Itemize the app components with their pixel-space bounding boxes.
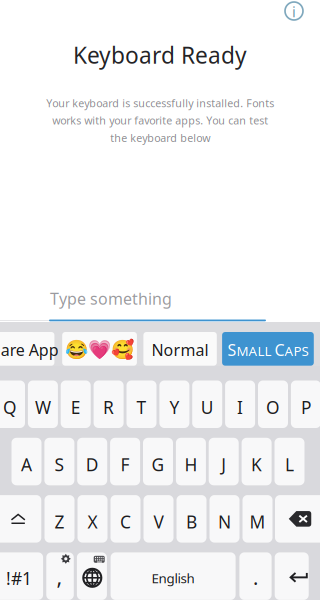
- button[interactable]: Q: [0, 380, 25, 428]
- button[interactable]: L: [274, 438, 304, 485]
- button[interactable]: !#1: [0, 552, 43, 600]
- button[interactable]: M: [242, 495, 272, 543]
- button[interactable]: J: [209, 438, 239, 485]
- staticText: Type something: [50, 288, 172, 309]
- staticText: F: [121, 453, 130, 476]
- staticText: R: [103, 396, 114, 419]
- button[interactable]: Share App: [0, 332, 54, 366]
- button[interactable]: Y: [159, 380, 189, 428]
- staticText: H: [184, 453, 197, 476]
- staticText: Normal: [152, 339, 209, 360]
- staticText: A: [21, 453, 32, 476]
- button[interactable]: H: [176, 438, 206, 485]
- staticText: V: [153, 510, 163, 533]
- button[interactable]: I: [225, 380, 255, 428]
- staticText: SMALL CAPS: [227, 339, 308, 360]
- staticText: Keyboard Ready: [73, 40, 247, 70]
- staticText: K: [251, 453, 262, 476]
- staticText: P: [301, 396, 311, 419]
- button[interactable]: Return: [275, 552, 309, 600]
- staticText: W: [35, 396, 51, 419]
- button[interactable]: R: [94, 380, 124, 428]
- staticText: L: [285, 453, 294, 476]
- staticText: 😂💗🥰: [65, 339, 134, 360]
- staticText: M: [249, 510, 265, 533]
- button[interactable]: S: [44, 438, 74, 485]
- staticText: G: [151, 453, 164, 476]
- button[interactable]: Next keyboard: [77, 552, 107, 600]
- button[interactable]: 😂💗🥰: [62, 332, 137, 366]
- button[interactable]: F: [110, 438, 140, 485]
- staticText: I: [237, 396, 243, 419]
- staticText: Your keyboard is successfully installed.…: [46, 96, 274, 145]
- staticText: English: [152, 569, 195, 587]
- button[interactable]: SMALL CAPS: [222, 332, 314, 366]
- button[interactable]: Info: [284, 1, 304, 21]
- button[interactable]: Z: [44, 495, 74, 543]
- staticText: Z: [54, 510, 64, 533]
- staticText: C: [120, 510, 131, 533]
- staticText: B: [186, 510, 197, 533]
- staticText: O: [266, 396, 280, 419]
- staticText: .: [253, 564, 258, 590]
- button[interactable]: B: [176, 495, 206, 543]
- button[interactable]: Settings: [46, 552, 74, 600]
- staticText: X: [87, 510, 97, 533]
- button[interactable]: W: [28, 380, 58, 428]
- staticText: ,: [56, 562, 62, 591]
- button[interactable]: X: [77, 495, 107, 543]
- button[interactable]: K: [242, 438, 272, 485]
- button[interactable]: O: [258, 380, 288, 428]
- staticText: Y: [169, 396, 179, 419]
- staticText: S: [54, 453, 64, 476]
- button[interactable]: D: [77, 438, 107, 485]
- staticText: E: [71, 396, 81, 419]
- button[interactable]: English: [111, 552, 236, 600]
- button[interactable]: N: [209, 495, 239, 543]
- staticText: !#1: [6, 567, 32, 590]
- staticText: D: [86, 453, 99, 476]
- staticText: N: [218, 510, 231, 533]
- button[interactable]: E: [61, 380, 91, 428]
- button[interactable]: U: [192, 380, 222, 428]
- button[interactable]: C: [110, 495, 140, 543]
- button[interactable]: Normal: [143, 332, 217, 366]
- button[interactable]: G: [143, 438, 173, 485]
- staticText: U: [201, 396, 214, 419]
- button[interactable]: T: [126, 380, 156, 428]
- button[interactable]: A: [11, 438, 41, 485]
- button[interactable]: Backspace: [275, 495, 320, 543]
- staticText: Share App: [0, 339, 59, 360]
- button[interactable]: P: [291, 380, 320, 428]
- button[interactable]: Shift: [0, 495, 41, 543]
- button[interactable]: .: [239, 552, 272, 600]
- staticText: i: [292, 2, 296, 21]
- staticText: J: [221, 453, 226, 476]
- button[interactable]: V: [143, 495, 173, 543]
- staticText: T: [136, 396, 146, 419]
- staticText: Q: [3, 396, 17, 419]
